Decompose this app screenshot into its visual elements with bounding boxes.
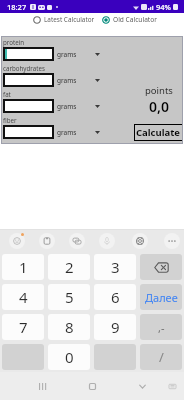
button[interactable]: units dropdown [92,75,102,85]
button[interactable]: Latest Calculator [33,15,95,24]
staticText: 2 [65,257,74,277]
button[interactable]: units dropdown [92,127,102,137]
staticText: Далее [145,290,178,305]
staticText: 8 [65,317,74,337]
staticText: protein [3,38,25,46]
button[interactable]: Comma [140,314,182,340]
button[interactable]: units dropdown [92,49,102,59]
button[interactable]: Settings [132,233,148,249]
button[interactable]: Calculate [134,124,183,141]
button[interactable]: More options [164,233,180,249]
staticText: 18:27 [7,2,27,12]
staticText: grams [57,102,77,111]
staticText: Calculate [136,126,181,139]
button[interactable]: Emoji [9,233,25,249]
staticText: 0,0 [149,97,169,116]
button[interactable]: Old Calculator [102,15,157,24]
staticText: 6 [111,287,120,307]
button[interactable]: 2 [48,254,90,280]
staticText: 7 [19,317,28,337]
button[interactable]: Voice input [99,233,115,249]
button[interactable]: Back [131,375,153,397]
button[interactable]: Stickers [69,233,85,249]
staticText: grams [57,128,77,137]
staticText: 4 [19,287,28,307]
button[interactable] [3,47,54,61]
button[interactable]: 9 [94,314,136,340]
staticText: 9 [111,317,120,337]
staticText: ,- [158,320,165,335]
staticText: fat [3,90,11,98]
button[interactable]: 0 [48,344,90,370]
button[interactable]: Recents [31,375,53,397]
button[interactable]: 4 [2,284,44,310]
button[interactable] [3,99,54,113]
button[interactable]: 3 [94,254,136,280]
button[interactable]: units dropdown [92,101,102,111]
button[interactable] [3,125,54,139]
button[interactable]: 8 [48,314,90,340]
button[interactable]: Backspace [140,254,182,280]
staticText: grams [57,50,77,59]
staticText: carbohydrates [3,64,45,72]
button[interactable]: Home [81,375,103,397]
button[interactable] [3,73,54,87]
staticText: Old Calculator [113,15,157,24]
button[interactable]: 7 [2,314,44,340]
button[interactable]: 6 [94,284,136,310]
staticText: 94% [156,2,171,12]
button[interactable]: Next [140,284,182,310]
button[interactable]: 1 [2,254,44,280]
staticText: 0 [65,347,74,367]
staticText: Latest Calculator [44,15,95,24]
staticText: fiber [3,116,17,124]
button[interactable]: Hide keyboard [161,375,183,397]
staticText: 3 [111,257,120,277]
staticText: / [159,348,164,366]
staticText: grams [57,76,77,85]
button[interactable]: Clipboard [39,233,55,249]
staticText: 5 [65,287,74,307]
staticText: points [145,84,173,97]
button[interactable]: 5 [48,284,90,310]
staticText: 1 [19,257,28,277]
button[interactable]: Slash [140,344,182,370]
